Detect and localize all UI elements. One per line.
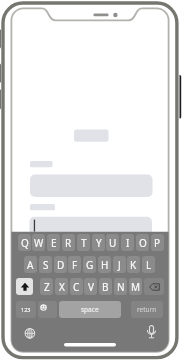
staticText: C	[73, 280, 80, 294]
button[interactable]: space	[59, 301, 121, 318]
button[interactable]: U	[106, 234, 119, 251]
button[interactable]: D	[54, 256, 67, 273]
button[interactable]: X	[55, 278, 68, 295]
staticText: K	[130, 258, 137, 272]
staticText: D	[57, 258, 65, 272]
staticText: L	[146, 258, 152, 272]
staticText: T	[81, 236, 87, 250]
button[interactable]: G	[83, 256, 96, 273]
button[interactable]: Y	[92, 234, 105, 251]
button[interactable]: 123	[16, 301, 36, 318]
button[interactable]: J	[113, 256, 126, 273]
staticText: F	[72, 258, 78, 272]
staticText: 123	[21, 306, 31, 313]
button[interactable]: K	[127, 256, 140, 273]
button[interactable]: S	[39, 256, 52, 273]
staticText: B	[102, 280, 109, 294]
staticText: H	[101, 258, 109, 272]
button[interactable]: F	[68, 256, 81, 273]
staticText: W	[34, 236, 44, 250]
staticText: I	[126, 236, 130, 250]
staticText: J	[118, 258, 121, 272]
staticText: Y	[96, 236, 102, 250]
staticText: U	[109, 236, 117, 250]
button[interactable]: E	[47, 234, 60, 251]
button[interactable]: H	[98, 256, 111, 273]
staticText: M	[131, 280, 141, 294]
button[interactable]: Z	[40, 278, 53, 295]
button[interactable]: W	[32, 234, 45, 251]
staticText: V	[88, 280, 94, 294]
button[interactable]	[16, 278, 33, 295]
button[interactable]: B	[99, 278, 112, 295]
staticText: O	[139, 236, 147, 250]
staticText: S	[43, 258, 49, 272]
staticText: N	[117, 280, 125, 294]
button[interactable]: C	[70, 278, 83, 295]
button[interactable]	[144, 278, 164, 295]
staticText: X	[59, 280, 65, 294]
button[interactable]	[38, 301, 57, 318]
button[interactable]: N	[114, 278, 127, 295]
staticText: Q	[21, 236, 29, 250]
button[interactable]: R	[62, 234, 75, 251]
staticText: A	[27, 258, 34, 272]
button[interactable]: Q	[18, 234, 31, 251]
button[interactable]: I	[121, 234, 134, 251]
button[interactable]: A	[24, 256, 37, 273]
button[interactable]: L	[142, 256, 155, 273]
staticText: R	[65, 236, 72, 250]
staticText: E	[51, 236, 57, 250]
staticText: return	[137, 305, 157, 314]
staticText: Z	[44, 280, 50, 294]
staticText: G	[86, 258, 94, 272]
button[interactable]: P	[151, 234, 164, 251]
staticText: space	[81, 305, 99, 314]
button[interactable]: T	[77, 234, 90, 251]
staticText: P	[154, 236, 161, 250]
button[interactable]: return	[131, 301, 163, 318]
button[interactable]: V	[84, 278, 97, 295]
button[interactable]: M	[129, 278, 142, 295]
button[interactable]: O	[136, 234, 149, 251]
